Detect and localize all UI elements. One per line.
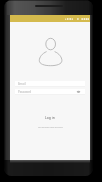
button[interactable]: Log in [10,113,90,122]
button[interactable]: Email [15,81,85,87]
button[interactable]: Password [15,89,85,95]
staticText: Email [18,82,26,86]
button[interactable]: you already have account? [10,124,90,131]
button[interactable]: Show password [76,89,81,95]
staticText: Password [18,90,32,94]
staticText: Log in [45,115,55,120]
staticText: you already have account? [38,126,63,129]
